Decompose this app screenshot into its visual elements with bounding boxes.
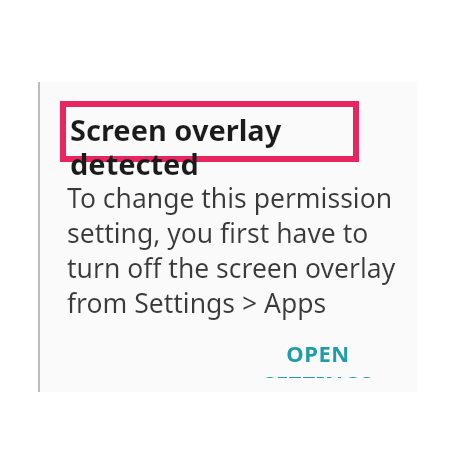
staticText: OPEN SETTINGS xyxy=(238,338,398,378)
staticText: Screen overlay detected xyxy=(70,110,360,183)
staticText: To change this permission setting, you f… xyxy=(67,180,407,321)
button[interactable]: OPEN SETTINGS xyxy=(238,338,398,378)
